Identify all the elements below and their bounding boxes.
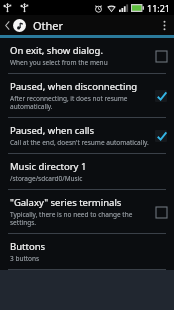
- staticText: "Galaxy" series terminals: [10, 196, 122, 209]
- staticText: 3 buttons: [10, 254, 40, 263]
- staticText: Music directory 1: [10, 160, 87, 173]
- button[interactable]: Paused, when disconnecting earphone: [0, 74, 174, 117]
- staticText: Buttons: [10, 240, 46, 253]
- button[interactable]: Paused, when calls: [0, 118, 174, 153]
- button[interactable]: "Galaxy" series terminals: [0, 190, 174, 233]
- staticText: When you select from the menu: [10, 58, 108, 67]
- staticText: /storage/sdcard0/Music: [10, 174, 83, 183]
- button[interactable]: Buttons: [0, 234, 174, 269]
- staticText: Call at the end, doesn't resume automati…: [10, 138, 149, 147]
- staticText: 11:21: [147, 2, 171, 14]
- staticText: After reconnecting, it does not resume a…: [10, 94, 150, 111]
- button[interactable]: Music directory 1: [0, 154, 174, 189]
- staticText: Typically, there is no need to change th…: [10, 210, 150, 227]
- staticText: Paused, when disconnecting earphone: [10, 80, 150, 93]
- staticText: Paused, when calls: [10, 124, 95, 137]
- button[interactable]: On exit, show dialog.: [0, 38, 174, 73]
- staticText: Other: [33, 18, 64, 33]
- button[interactable]: Back: [3, 17, 28, 34]
- button[interactable]: More options: [157, 15, 171, 35]
- staticText: On exit, show dialog.: [10, 44, 103, 57]
